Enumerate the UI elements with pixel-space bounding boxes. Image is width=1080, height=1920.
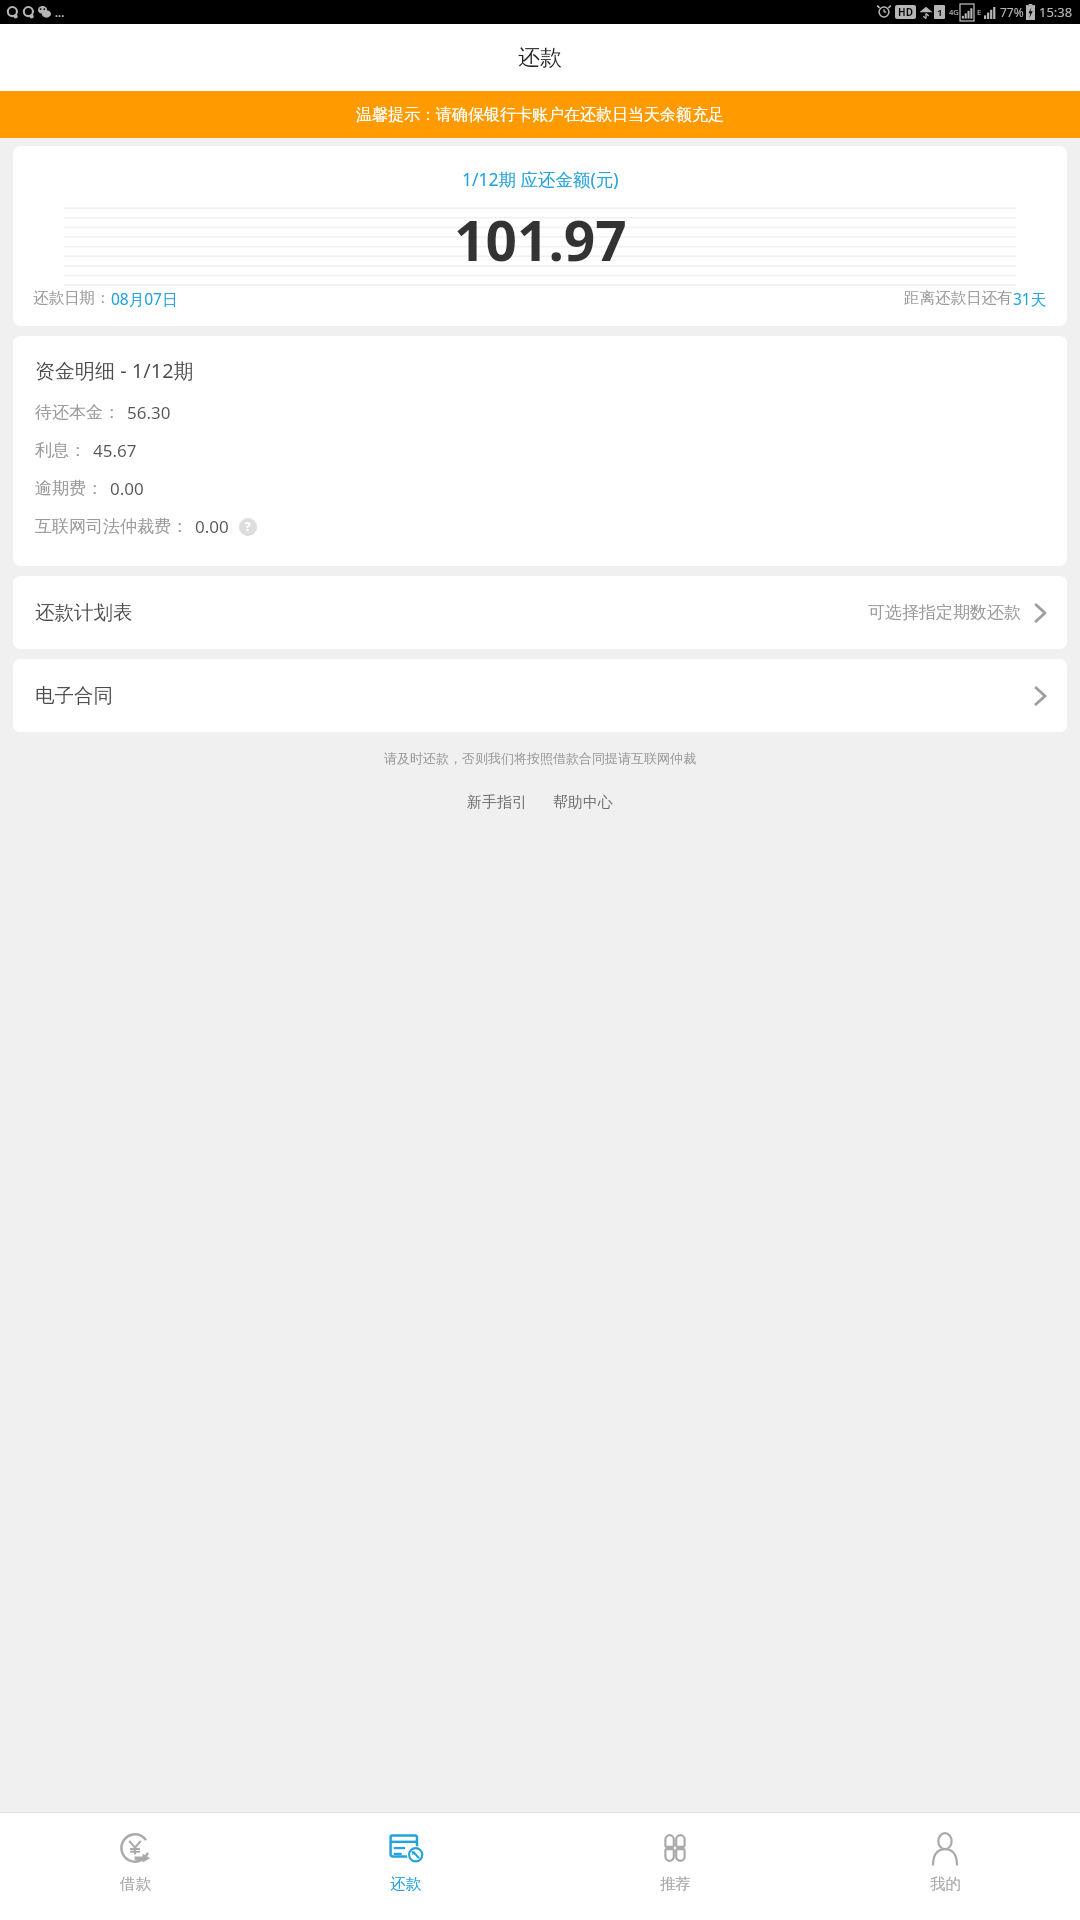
staticText: 还款计划表 (35, 600, 133, 625)
staticText: 还款 (518, 44, 562, 72)
button[interactable]: 还款计划表 (13, 576, 1067, 649)
staticText: ? (245, 519, 251, 535)
button[interactable]: 新手指引 (462, 790, 532, 815)
staticText: ... (55, 5, 65, 20)
staticText: 15:38 (1039, 3, 1073, 21)
staticText: 待还本金： (35, 402, 120, 423)
button[interactable]: 帮助中心 (548, 790, 618, 815)
button[interactable]: 借款 (0, 1813, 270, 1920)
button[interactable]: 费用说明 (239, 518, 257, 536)
staticText: E (977, 7, 982, 17)
staticText: 请及时还款，否则我们将按照借款合同提请互联网仲裁 (0, 750, 1080, 766)
staticText: HD (898, 5, 913, 19)
staticText: 推荐 (660, 1874, 691, 1894)
staticText: 45.67 (93, 439, 137, 462)
button[interactable]: 还款 (270, 1813, 540, 1920)
staticText: 电子合同 (35, 683, 113, 708)
button[interactable]: 电子合同 (13, 659, 1067, 732)
staticText: 我的 (930, 1874, 961, 1894)
staticText: 56.30 (127, 401, 171, 424)
staticText: 31天 (1013, 288, 1047, 309)
staticText: 还款日期： (33, 288, 111, 308)
staticText: 0.00 (110, 477, 144, 500)
staticText: 08月07日 (111, 288, 178, 309)
staticText: 1 (937, 6, 943, 19)
staticText: 温馨提示：请确保银行卡账户在还款日当天余额充足 (356, 105, 724, 125)
staticText: 借款 (120, 1874, 151, 1894)
staticText: 距离还款日还有 (904, 288, 1013, 308)
staticText: 4G (949, 7, 959, 17)
staticText: 利息： (35, 440, 86, 461)
staticText: 新手指引 (467, 793, 527, 812)
staticText: 1/12期 应还金额(元) (462, 167, 619, 191)
staticText: 还款 (390, 1874, 421, 1894)
staticText: 资金明细 - 1/12期 (35, 357, 194, 384)
staticText: 77% (1000, 4, 1024, 20)
staticText: 101.97 (454, 202, 627, 277)
staticText: 帮助中心 (553, 793, 613, 812)
button[interactable]: 推荐 (540, 1813, 810, 1920)
staticText: 0.00 (195, 515, 229, 538)
staticText: 逾期费： (35, 478, 103, 499)
staticText: 互联网司法仲裁费： (35, 516, 188, 537)
staticText: 可选择指定期数还款 (868, 602, 1021, 623)
button[interactable]: 我的 (810, 1813, 1080, 1920)
